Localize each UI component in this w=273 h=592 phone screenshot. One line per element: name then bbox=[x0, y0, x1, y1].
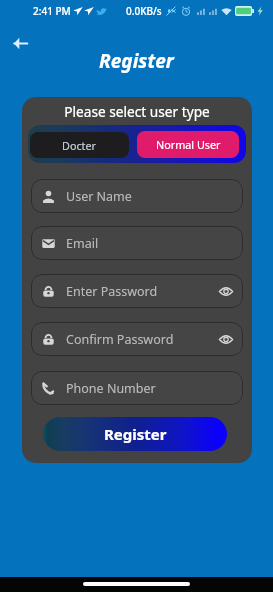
staticText: Email bbox=[66, 235, 99, 252]
staticText: Phone Number bbox=[66, 380, 156, 397]
button[interactable]: Back bbox=[7, 30, 33, 56]
button[interactable]: Email bbox=[31, 226, 243, 260]
button[interactable]: Register bbox=[43, 417, 227, 451]
staticText: Normal User bbox=[156, 137, 221, 152]
button[interactable]: Normal User bbox=[137, 131, 239, 158]
button[interactable]: User Name bbox=[31, 179, 243, 213]
staticText: Docter bbox=[62, 138, 97, 153]
button[interactable]: Docter bbox=[30, 132, 129, 158]
staticText: Enter Password bbox=[66, 283, 158, 300]
staticText: Confirm Password bbox=[66, 331, 174, 348]
staticText: 2:41 PM bbox=[33, 4, 71, 18]
staticText: User Name bbox=[66, 188, 132, 205]
staticText: Register bbox=[104, 424, 167, 444]
staticText: 0.0KB/s bbox=[126, 4, 162, 18]
button[interactable]: Phone Number bbox=[31, 371, 243, 405]
button[interactable]: Enter Password bbox=[31, 274, 243, 308]
staticText: Register bbox=[99, 48, 174, 74]
button[interactable]: Confirm Password bbox=[31, 322, 243, 356]
staticText: Please select user type bbox=[64, 102, 210, 121]
